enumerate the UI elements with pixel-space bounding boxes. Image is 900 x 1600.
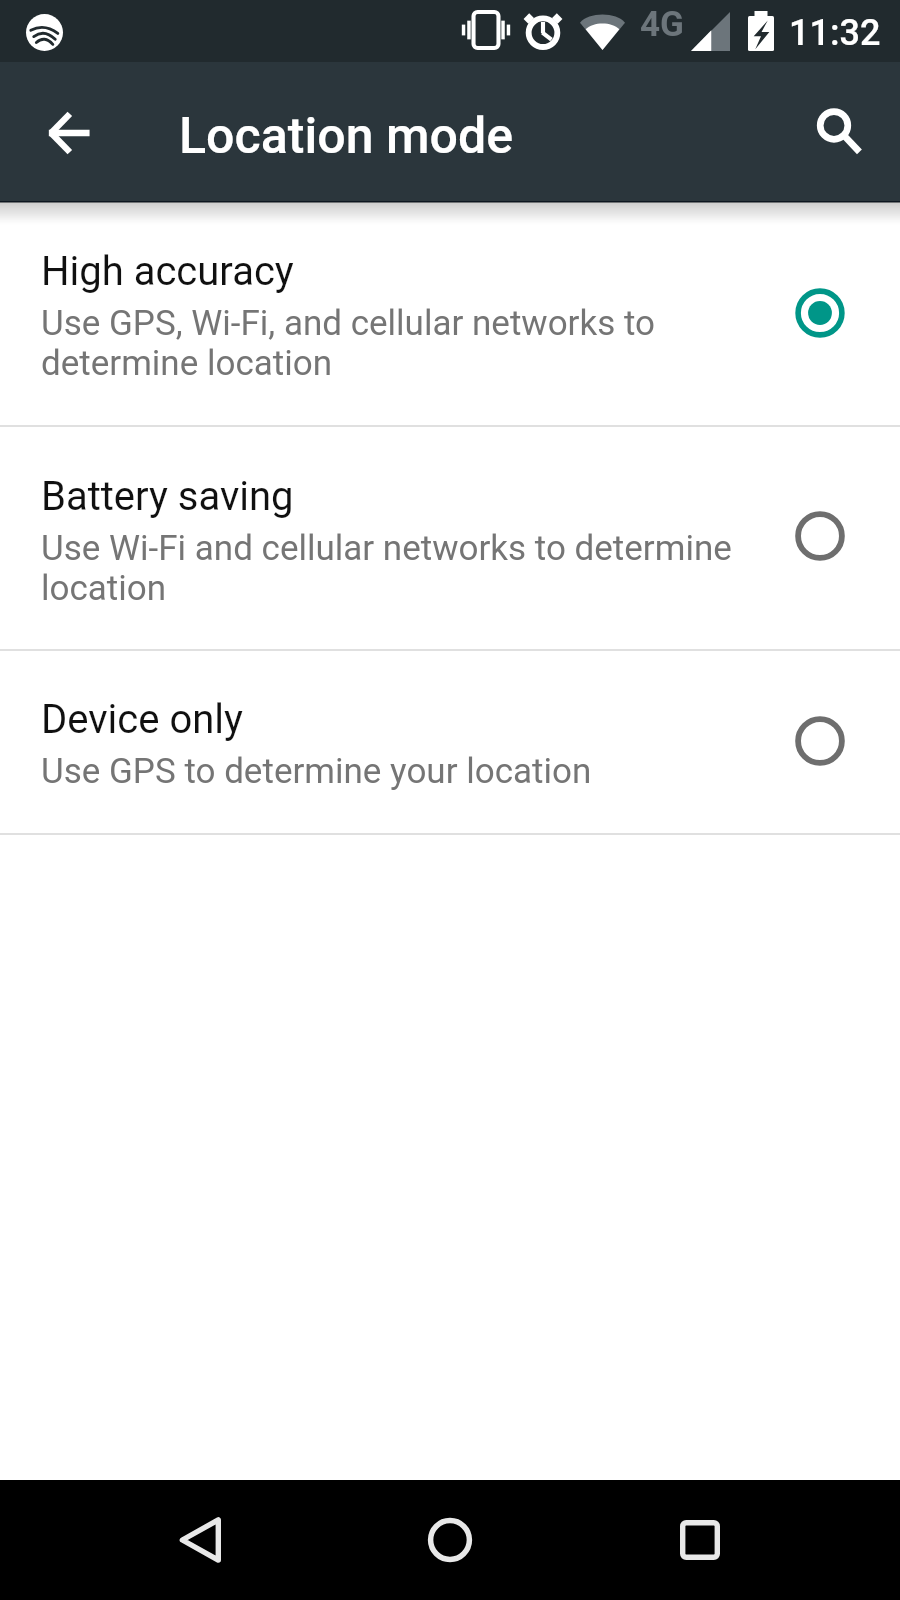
button[interactable]: Navigate up	[27, 90, 111, 174]
button[interactable]: Search	[798, 90, 882, 174]
staticText: Use Wi-Fi and cellular networks to deter…	[41, 529, 732, 609]
staticText: 4G	[640, 4, 684, 45]
staticText: Device only	[41, 696, 243, 743]
staticText: Battery saving	[41, 473, 294, 520]
button[interactable]: Back	[140, 1480, 260, 1600]
staticText: Location mode	[179, 109, 514, 165]
button[interactable]: Recent apps	[640, 1480, 760, 1600]
button[interactable]: Home	[390, 1480, 510, 1600]
staticText: 11:32	[789, 12, 881, 54]
staticText: Use GPS to determine your location	[41, 752, 592, 792]
button[interactable]: Battery saving	[0, 427, 900, 649]
button[interactable]: Device only	[0, 651, 900, 833]
staticText: Use GPS, Wi-Fi, and cellular networks to…	[41, 304, 656, 384]
button[interactable]: High accuracy	[0, 201, 900, 425]
staticText: High accuracy	[41, 248, 294, 295]
